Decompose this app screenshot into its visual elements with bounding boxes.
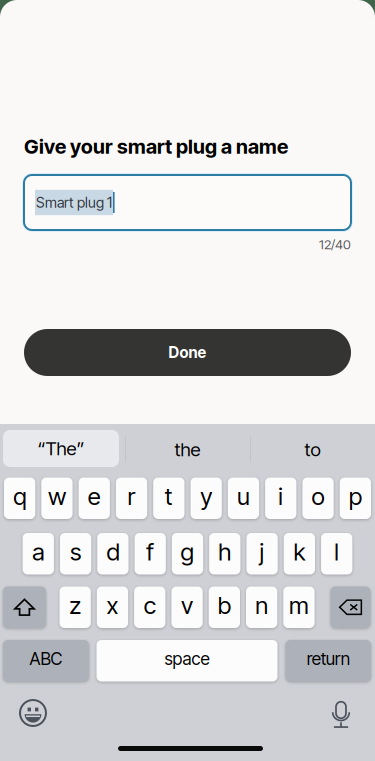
button[interactable]: q [4,477,35,519]
button[interactable]: c [134,586,165,628]
button[interactable]: j [246,533,278,574]
button[interactable]: a [23,533,54,574]
staticText: i [278,482,283,511]
staticText: ABC [29,648,62,669]
button[interactable]: b [209,586,240,628]
staticText: x [106,591,118,620]
staticText: 12/40 [319,236,351,252]
button[interactable]: f [134,533,166,574]
button[interactable]: return [285,640,371,681]
staticText: z [69,591,81,620]
staticText: q [13,482,26,511]
button[interactable]: p [340,477,371,519]
staticText: Smart plug 1 [36,194,112,211]
staticText: h [218,537,231,566]
staticText: f [146,537,154,566]
button[interactable]: to [250,431,375,468]
staticText: s [70,537,81,566]
button[interactable]: Shift [3,586,46,628]
button[interactable]: space [96,640,277,681]
staticText: Give your smart plug a name [24,134,288,159]
button[interactable]: Delete [330,586,370,628]
staticText: n [255,591,268,620]
staticText: Done [168,343,206,362]
button[interactable]: m [283,586,315,628]
staticText: b [218,591,231,620]
button[interactable]: d [97,533,128,574]
staticText: p [349,482,362,511]
button[interactable]: i [265,477,296,519]
staticText: g [180,537,194,566]
staticText: w [48,482,66,511]
button[interactable]: “The” [3,430,119,467]
button[interactable]: Emoji [11,698,55,728]
staticText: m [289,591,309,620]
button[interactable]: r [116,477,147,519]
button[interactable]: n [246,586,277,628]
staticText: t [165,482,173,511]
staticText: o [311,482,324,511]
staticText: l [334,537,339,566]
staticText: k [293,537,305,566]
button[interactable]: e [79,477,110,519]
staticText: the [174,438,200,461]
button[interactable]: Done [24,329,351,376]
staticText: to [304,438,320,461]
staticText: space [164,648,209,669]
button[interactable]: x [97,586,128,628]
button[interactable]: Dictation [319,695,363,725]
staticText: d [106,537,119,566]
button[interactable]: v [171,586,203,628]
button[interactable]: h [209,533,240,574]
staticText: u [237,482,250,511]
button[interactable]: ABC [3,640,89,681]
button[interactable]: l [321,533,352,574]
button[interactable]: o [302,477,334,519]
button[interactable]: k [284,533,315,574]
staticText: a [32,537,44,566]
button[interactable]: t [153,477,184,519]
button[interactable]: the [125,431,250,468]
staticText: v [181,591,193,620]
staticText: r [127,482,135,511]
button[interactable]: y [190,477,222,519]
staticText: e [88,482,101,511]
button[interactable]: w [41,477,73,519]
button[interactable]: u [228,477,259,519]
staticText: c [144,591,156,620]
staticText: return [307,648,350,669]
staticText: j [260,537,265,566]
button[interactable]: g [172,533,203,574]
button[interactable]: s [60,533,91,574]
button[interactable]: z [59,586,91,628]
staticText: “The” [37,437,84,460]
staticText: y [200,482,212,511]
